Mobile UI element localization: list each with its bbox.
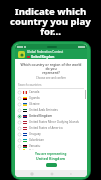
staticText: Ukraine [29,102,40,106]
staticText: Uganda [29,96,40,100]
button[interactable]: Home [49,171,54,176]
button[interactable]: United States Minor Outlying Islands [18,119,84,125]
staticText: Which country or region of the world do … [19,62,83,75]
staticText: Vatican [29,149,39,150]
button[interactable]: United States of America [18,125,84,131]
staticText: United Kingdom [36,156,66,161]
button[interactable]: Global Federation Contest [15,49,87,59]
staticText: United Kingdom [31,55,55,59]
button[interactable]: Confirm [46,163,57,167]
button[interactable]: Vatican [18,149,84,150]
button[interactable]: United Kingdom [18,113,84,119]
staticText: Search countries [18,83,42,87]
staticText: Indicate which country you play for... [10,5,91,38]
button[interactable]: Uzbekistan [18,137,84,143]
button[interactable]: Back [68,171,73,176]
staticText: You are representing [35,152,67,156]
staticText: Choose one and confirm [36,76,66,80]
staticText: United Kingdom [29,114,52,118]
button[interactable]: Vanuatu [18,143,84,149]
staticText: United Arab Emirates [29,108,58,112]
staticText: Global Federation Contest [27,50,63,54]
staticText: United States Minor Outlying Islands [29,120,79,124]
button[interactable]: Canada [18,89,84,95]
button[interactable]: Ukraine [18,101,84,107]
staticText: Vanuatu [29,144,41,148]
staticText: Uruguay [29,132,41,136]
button[interactable]: Uganda [18,95,84,101]
button[interactable]: Uruguay [18,131,84,137]
button[interactable]: Recents [29,171,34,176]
staticText: Canada [29,90,40,94]
staticText: United States of America [29,126,63,130]
button[interactable]: United Arab Emirates [18,107,84,113]
staticText: Uzbekistan [29,138,45,142]
